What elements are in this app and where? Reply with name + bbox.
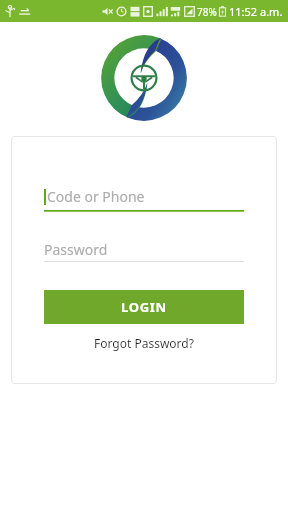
staticText: Forgot Password? [94,335,194,351]
button[interactable]: LOGIN [44,290,244,324]
staticText: LOGIN [121,298,167,316]
staticText: Password [44,240,108,259]
button[interactable]: Forgot Password? [44,335,244,351]
staticText: 11:52 a.m. [229,4,283,19]
staticText: 78% [197,5,217,19]
button[interactable]: Code or Phone [44,182,244,210]
staticText: Code or Phone [47,187,145,206]
button[interactable]: Password [44,237,244,261]
